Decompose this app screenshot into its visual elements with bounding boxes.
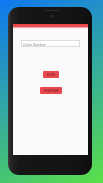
- button[interactable]: ENTER: [43, 71, 59, 78]
- staticText: CREATE NEW: [43, 89, 59, 93]
- button[interactable]: Order Number: [21, 40, 80, 47]
- staticText: ENTER: [47, 73, 55, 77]
- staticText: Order Number: [23, 42, 46, 46]
- button[interactable]: CREATE NEW: [40, 87, 62, 94]
